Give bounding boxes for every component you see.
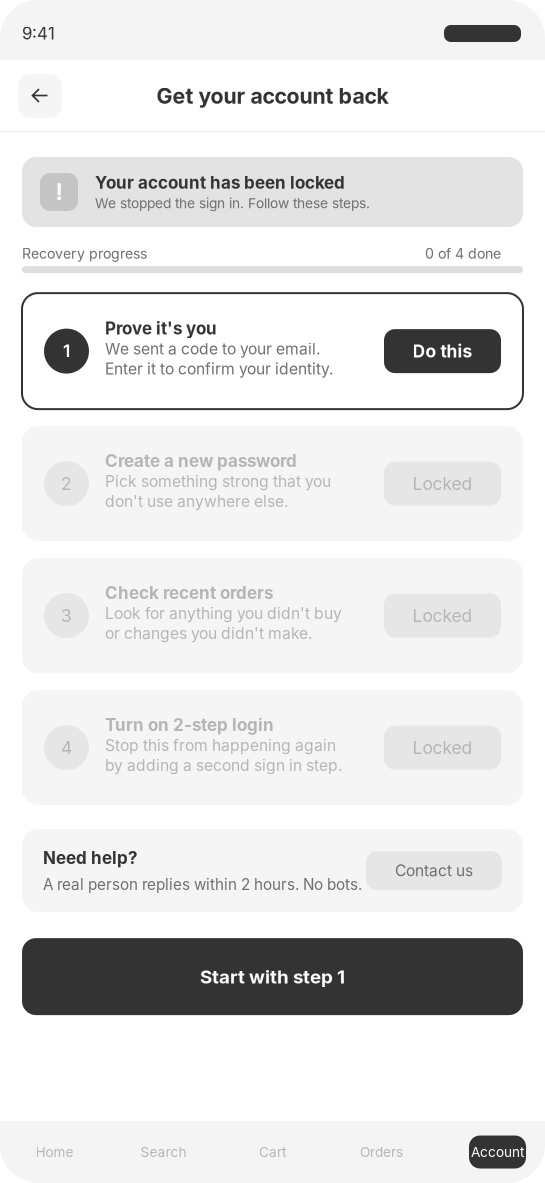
staticText: Locked [412, 737, 472, 758]
staticText: We sent a code to your email. [105, 339, 320, 358]
button[interactable]: Back [18, 74, 62, 118]
staticText: by adding a second sign in step. [105, 756, 342, 775]
staticText: Account [471, 1144, 524, 1160]
staticText: ! [55, 178, 62, 206]
staticText: Cart [259, 1144, 286, 1160]
staticText: We stopped the sign in. Follow these ste… [95, 195, 370, 211]
staticText: Get your account back [156, 83, 388, 109]
staticText: Your account has been locked [95, 172, 345, 193]
staticText: Create a new password [105, 450, 297, 471]
staticText: Enter it to confirm your identity. [105, 359, 333, 378]
staticText: 4 [61, 737, 72, 758]
staticText: 9:41 [22, 23, 55, 44]
staticText: Recovery progress [22, 245, 147, 262]
staticText: or changes you didn't make. [105, 624, 312, 643]
staticText: 0 of 4 done [425, 245, 501, 262]
button[interactable]: Start with step 1 [22, 938, 523, 1015]
button[interactable]: Orders [327, 1121, 436, 1183]
staticText: Check recent orders [105, 582, 273, 603]
staticText: 1 [63, 341, 70, 362]
staticText: don't use anywhere else. [105, 492, 288, 511]
button[interactable]: Cart [218, 1121, 327, 1183]
button[interactable]: Do this [384, 329, 501, 373]
staticText: Start with step 1 [200, 965, 345, 988]
staticText: Need help? [43, 848, 137, 868]
button[interactable]: Search [109, 1121, 218, 1183]
staticText: 2 [61, 473, 72, 494]
staticText: Turn on 2-step login [105, 714, 274, 735]
button[interactable]: Home [0, 1121, 109, 1183]
staticText: Search [140, 1144, 186, 1160]
staticText: 3 [61, 605, 72, 626]
staticText: Look for anything you didn't buy [105, 604, 342, 623]
staticText: Contact us [395, 861, 473, 880]
staticText: Locked [412, 605, 472, 626]
staticText: Do this [412, 341, 472, 362]
staticText: Locked [412, 473, 472, 494]
button[interactable]: Account [436, 1121, 545, 1183]
staticText: Pick something strong that you [105, 472, 331, 491]
staticText: Stop this from happening again [105, 736, 336, 755]
staticText: A real person replies within 2 hours. No… [43, 875, 362, 893]
button[interactable]: Contact us [366, 851, 502, 890]
staticText: Home [35, 1144, 73, 1160]
staticText: Orders [360, 1144, 403, 1160]
staticText: Prove it's you [105, 318, 217, 338]
